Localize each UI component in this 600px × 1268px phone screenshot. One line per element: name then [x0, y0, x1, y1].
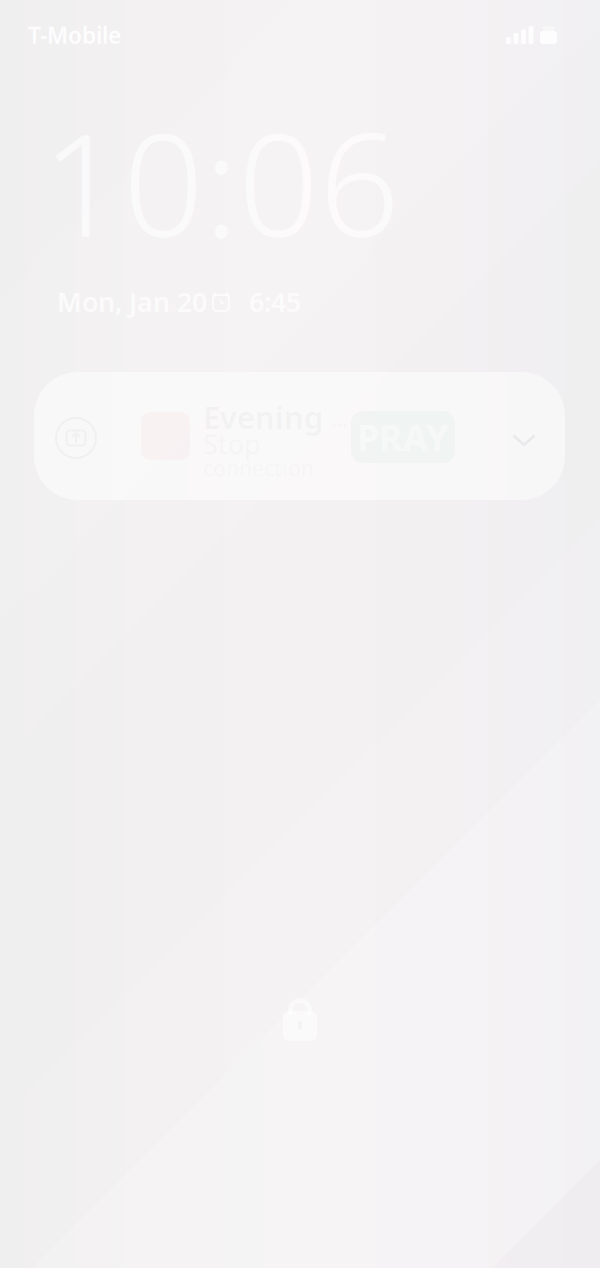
staticText: T-Mobile [28, 20, 121, 50]
staticText: 6:45 [249, 284, 301, 319]
staticText: Mon, Jan 20 [57, 284, 207, 319]
